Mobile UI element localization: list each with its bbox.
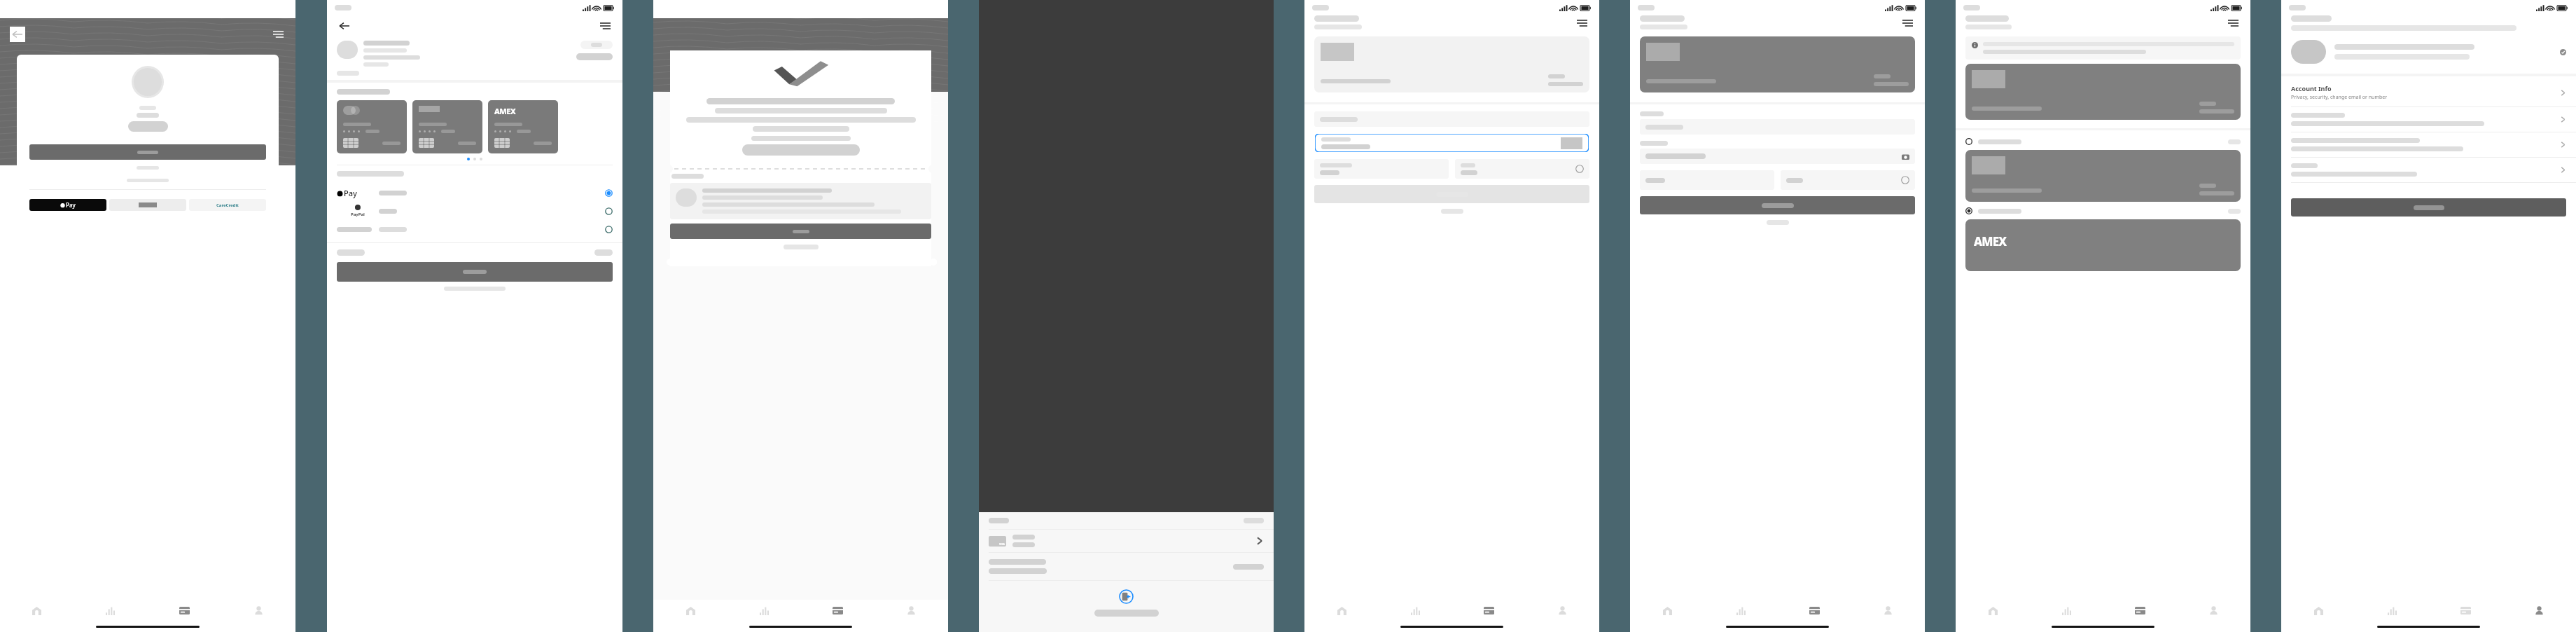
staticText: Pay xyxy=(344,188,357,198)
button[interactable]: Account Info xyxy=(2291,84,2566,101)
button[interactable] xyxy=(670,224,931,239)
button[interactable]: Activity xyxy=(727,600,801,621)
button[interactable] xyxy=(1645,149,1909,164)
button[interactable]: Pay xyxy=(29,199,106,211)
staticText: AMEX xyxy=(494,106,516,116)
button[interactable]: Home xyxy=(2281,600,2355,621)
button[interactable]: Home xyxy=(0,600,74,621)
button[interactable] xyxy=(1640,119,1915,135)
button[interactable]: Menu xyxy=(270,27,286,42)
button[interactable] xyxy=(1315,134,1589,152)
button[interactable]: Cards xyxy=(1452,600,1526,621)
button[interactable] xyxy=(337,262,613,282)
staticText: CareCredit xyxy=(216,202,239,208)
staticText: AMEX xyxy=(1974,233,2007,249)
button[interactable]: Activity xyxy=(2355,600,2429,621)
button[interactable]: Cards xyxy=(801,600,875,621)
button[interactable] xyxy=(109,199,186,211)
button[interactable]: Profile xyxy=(1526,600,1599,621)
button[interactable]: Home xyxy=(1304,600,1379,621)
button[interactable]: Pay xyxy=(337,184,613,202)
staticText: PayPal xyxy=(351,212,365,217)
button[interactable] xyxy=(1640,196,1915,214)
button[interactable]: Menu xyxy=(1574,15,1589,31)
button[interactable] xyxy=(1965,205,2241,217)
button[interactable]: Activity xyxy=(1379,600,1452,621)
button[interactable] xyxy=(29,144,266,160)
button[interactable]: Profile xyxy=(1851,600,1925,621)
button[interactable] xyxy=(337,220,613,238)
button[interactable]: Cards xyxy=(1778,600,1851,621)
button[interactable]: Activity xyxy=(1704,600,1778,621)
button[interactable] xyxy=(1786,170,1909,190)
button[interactable]: Profile xyxy=(2502,600,2576,621)
button[interactable] xyxy=(1461,159,1584,179)
button[interactable]: VISA xyxy=(989,530,1264,552)
button[interactable]: Home xyxy=(1630,600,1704,621)
button[interactable]: Cards xyxy=(2429,600,2502,621)
button[interactable] xyxy=(580,41,613,49)
button[interactable]: Home xyxy=(1956,600,2030,621)
button[interactable] xyxy=(2291,113,2566,126)
button[interactable]: Profile xyxy=(875,600,948,621)
staticText: VISA xyxy=(999,542,1005,546)
button[interactable]: Menu xyxy=(1900,15,1915,31)
button[interactable] xyxy=(1314,111,1589,127)
button[interactable] xyxy=(2291,163,2566,177)
staticText: Pay xyxy=(66,201,76,209)
button[interactable]: Cards xyxy=(147,600,221,621)
button[interactable]: Menu xyxy=(597,18,613,34)
button[interactable] xyxy=(2291,138,2566,151)
button[interactable]: PayPal xyxy=(337,202,613,220)
button[interactable] xyxy=(2291,198,2566,217)
button[interactable]: Cards xyxy=(2103,600,2177,621)
button[interactable]: Profile xyxy=(221,600,295,621)
button[interactable]: Activity xyxy=(74,600,147,621)
button[interactable] xyxy=(1320,159,1443,179)
button[interactable]: Back xyxy=(10,27,25,42)
button[interactable]: Activity xyxy=(2030,600,2103,621)
button[interactable]: Home xyxy=(653,600,727,621)
button[interactable] xyxy=(1965,136,2241,147)
button[interactable]: Back xyxy=(337,18,352,34)
button[interactable]: CareCredit xyxy=(189,199,266,211)
button[interactable]: Profile xyxy=(2177,600,2250,621)
button[interactable]: Menu xyxy=(2225,15,2241,31)
staticText: Privacy, security, change email or numbe… xyxy=(2291,94,2388,101)
button[interactable] xyxy=(1645,170,1769,190)
staticText: Account Info xyxy=(2291,84,2332,92)
